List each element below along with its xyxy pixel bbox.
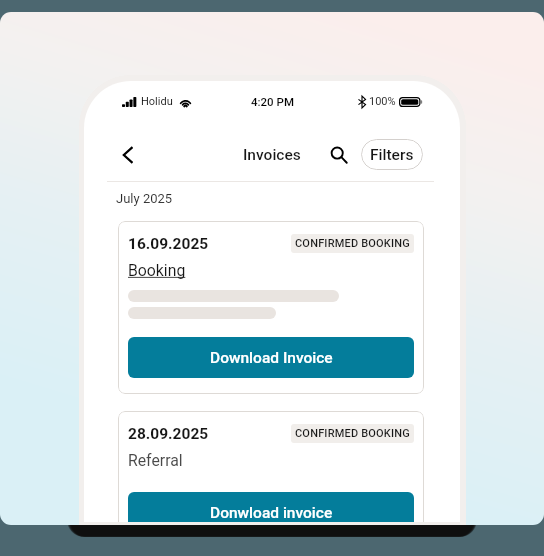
staticText: July 2025 (116, 191, 173, 206)
staticText: Holidu (141, 95, 173, 108)
staticText: 100% (369, 95, 396, 108)
staticText: 4:20 PM (251, 95, 294, 108)
staticText: 16.09.2025 (128, 235, 209, 253)
staticText: Donwload invoice (210, 504, 333, 522)
staticText: 28.09.2025 (128, 425, 209, 443)
staticText: Booking (128, 261, 186, 280)
button[interactable]: 28.09.2025 (118, 411, 424, 522)
staticText: Invoices (243, 146, 301, 164)
staticText: CONFIRMED BOOKING (295, 237, 410, 250)
staticText: Referral (128, 451, 183, 470)
button[interactable]: Search (322, 138, 356, 172)
staticText: Download Invoice (210, 349, 333, 367)
button[interactable]: Donwload invoice (128, 492, 414, 522)
button[interactable]: Filters (361, 139, 423, 170)
staticText: CONFIRMED BOOKING (295, 427, 410, 440)
staticText: Filters (370, 146, 414, 164)
button[interactable]: Back (111, 138, 145, 172)
button[interactable]: 16.09.2025 (118, 221, 424, 394)
button[interactable]: Download Invoice (128, 337, 414, 378)
